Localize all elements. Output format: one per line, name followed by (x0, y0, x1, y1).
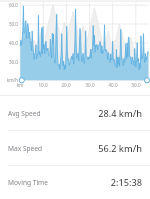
staticText: Avg Speed (8, 109, 41, 118)
staticText: 10.0 (37, 82, 49, 88)
staticText: 60.0 (2, 2, 18, 8)
staticText: Moving Time (8, 178, 48, 187)
staticText: 50.0 (2, 21, 18, 27)
staticText: km/h (1, 77, 18, 83)
staticText: 40.0 (107, 82, 119, 88)
button[interactable]: Avg Speed (0, 96, 150, 130)
staticText: Max Speed (8, 144, 43, 153)
staticText: 20.0 (60, 82, 72, 88)
button[interactable]: Max Speed (0, 131, 150, 165)
staticText: 30.0 (84, 82, 96, 88)
staticText: 30.0 (2, 59, 18, 65)
staticText: 50.0 (130, 82, 142, 88)
staticText: 2:15:38 (110, 176, 142, 189)
button[interactable]: Moving Time (0, 166, 150, 199)
staticText: 28.4 km/h (98, 107, 142, 120)
staticText: 40.0 (2, 40, 18, 46)
staticText: 56.2 km/h (98, 142, 142, 155)
staticText: km (14, 82, 26, 88)
